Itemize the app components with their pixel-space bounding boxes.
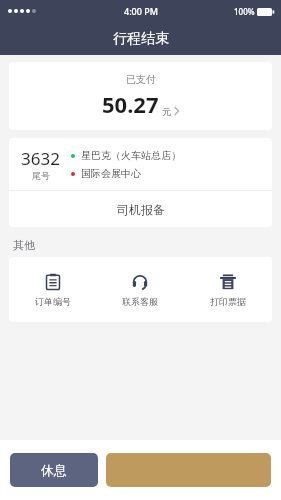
button[interactable]: 继续接单 [106, 453, 271, 487]
button[interactable]: 休息 [10, 453, 98, 487]
staticText: 打印票据 [210, 296, 246, 307]
other: 订单编号 [44, 273, 62, 291]
staticText: 星巴克（火车站总店） [81, 149, 181, 162]
button[interactable]: 已支付 [9, 62, 272, 130]
staticText: 元 [162, 106, 171, 117]
staticText: 司机报备 [117, 202, 165, 217]
button[interactable]: 司机报备 [9, 191, 272, 227]
staticText: 尾号 [32, 170, 50, 181]
staticText: 50.27 [102, 89, 159, 119]
button[interactable]: 打印票据 [184, 257, 272, 322]
staticText: 3632 [21, 147, 60, 170]
staticText: 休息 [41, 462, 67, 478]
staticText: 订单编号 [35, 296, 71, 307]
staticText: 100% [234, 6, 255, 17]
staticText: 已支付 [126, 73, 156, 86]
other: 打印票据 [219, 273, 237, 291]
staticText: 行程结束 [113, 30, 169, 48]
button[interactable]: 订单编号 [9, 257, 96, 322]
staticText: 其他 [13, 238, 35, 252]
staticText: 联系客服 [122, 296, 158, 307]
button[interactable]: 联系客服 [96, 257, 184, 322]
staticText: 国际会展中心 [81, 167, 141, 180]
other: 联系客服 [131, 273, 149, 291]
staticText: 4:00 PM [124, 5, 158, 17]
